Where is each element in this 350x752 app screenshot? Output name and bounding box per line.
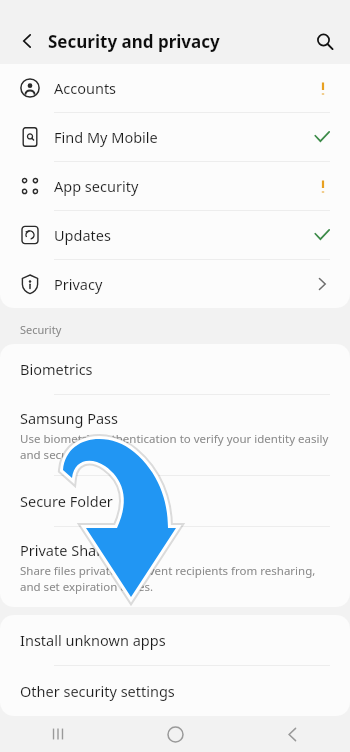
staticText: Find My Mobile xyxy=(54,127,158,147)
button[interactable]: Privacy xyxy=(0,260,350,308)
button[interactable]: Back xyxy=(14,28,40,54)
button[interactable]: Recents xyxy=(36,716,80,752)
button[interactable]: Back xyxy=(270,716,314,752)
staticText: Security and privacy xyxy=(48,30,220,53)
staticText: Secure Folder xyxy=(20,491,113,511)
staticText: Use biometric authentication to verify y… xyxy=(20,431,330,462)
staticText: Install unknown apps xyxy=(20,630,166,650)
button[interactable]: Private Share xyxy=(0,527,350,607)
button[interactable]: Home xyxy=(153,716,197,752)
staticText: Samsung Pass xyxy=(20,408,119,428)
staticText: Private Share xyxy=(20,540,111,560)
staticText: Updates xyxy=(54,225,111,245)
staticText: Share files privately, prevent recipient… xyxy=(20,563,330,594)
staticText: Accounts xyxy=(54,78,117,98)
button[interactable]: App security xyxy=(0,162,350,210)
button[interactable]: Updates xyxy=(0,211,350,259)
button[interactable]: Secure Folder xyxy=(0,476,350,526)
staticText: App security xyxy=(54,176,139,196)
button[interactable]: Other security settings xyxy=(0,666,350,716)
staticText: Privacy xyxy=(54,274,103,294)
staticText: Other security settings xyxy=(20,681,175,701)
staticText: Biometrics xyxy=(20,359,93,379)
button[interactable]: Install unknown apps xyxy=(0,615,350,665)
button[interactable]: Search xyxy=(310,27,338,55)
button[interactable]: Samsung Pass xyxy=(0,395,350,475)
button[interactable]: Find My Mobile xyxy=(0,113,350,161)
staticText: Security xyxy=(20,322,62,337)
button[interactable]: Biometrics xyxy=(0,344,350,394)
button[interactable]: Accounts xyxy=(0,64,350,112)
